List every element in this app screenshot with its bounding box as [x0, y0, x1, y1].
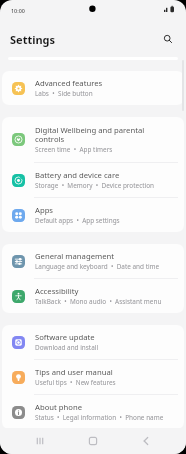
staticText: Accessibility — [35, 286, 153, 296]
staticText: 10:00 — [11, 7, 25, 14]
staticText: Tips and user manual — [35, 367, 153, 377]
staticText: Settings — [10, 32, 56, 47]
staticText: General management — [35, 251, 153, 261]
button[interactable]: Advanced features — [2, 71, 184, 105]
staticText: Software update — [35, 332, 153, 342]
staticText: About phone — [35, 402, 153, 412]
button[interactable]: Battery and device care — [2, 163, 184, 197]
button[interactable]: About phone — [2, 395, 184, 429]
staticText: Useful tips • New features — [35, 378, 116, 387]
staticText: TalkBack • Mono audio • Assistant menu — [35, 297, 162, 306]
button[interactable]: Home — [83, 431, 103, 451]
staticText: Digital Wellbeing and parental controls — [35, 125, 153, 144]
staticText: Status • Legal information • Phone name — [35, 413, 164, 422]
button[interactable]: Tips and user manual — [2, 360, 184, 394]
staticText: Apps — [35, 205, 153, 215]
button[interactable]: Accessibility — [2, 279, 184, 313]
button[interactable]: Back — [136, 431, 156, 451]
staticText: Download and install — [35, 343, 99, 352]
staticText: Default apps • App settings — [35, 216, 120, 225]
button[interactable]: General management — [2, 244, 184, 278]
button[interactable]: Digital Wellbeing and parental controls — [2, 117, 184, 162]
staticText: Advanced features — [35, 78, 153, 88]
staticText: Screen time • App timers — [35, 145, 113, 154]
button[interactable]: Recent apps — [30, 431, 50, 451]
button[interactable]: Software update — [2, 325, 184, 359]
staticText: Labs • Side button — [35, 89, 93, 98]
button[interactable]: Apps — [2, 198, 184, 232]
staticText: Storage • Memory • Device protection — [35, 181, 154, 190]
staticText: Battery and device care — [35, 170, 153, 180]
button[interactable]: Search — [159, 30, 177, 48]
staticText: Language and keyboard • Date and time — [35, 262, 160, 271]
